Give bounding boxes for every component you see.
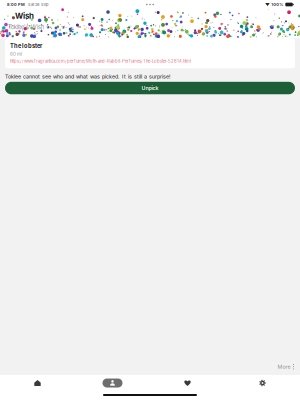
staticText: 8:00 PM [7,2,25,7]
button[interactable]: Unpick [5,82,295,94]
staticText: Sat 28 Sep [25,2,48,7]
staticText: Wish [15,11,34,21]
button[interactable]: Favourites [150,373,225,393]
staticText: 60 ml [10,51,22,57]
staticText: https://www.fragrantica.com/perfume/Moth… [10,59,191,64]
staticText: 100% [271,2,283,7]
button[interactable]: More [277,360,300,371]
button[interactable]: Home [0,373,75,393]
staticText: Toklee's Wish [8,24,44,31]
button[interactable]: Wish [75,373,150,393]
staticText: More [277,363,290,370]
staticText: Unpick [141,85,158,91]
staticText: Toklee cannot see who and what was picke… [5,73,171,80]
button[interactable]: Settings [225,373,300,393]
staticText: The lobster [10,42,42,49]
